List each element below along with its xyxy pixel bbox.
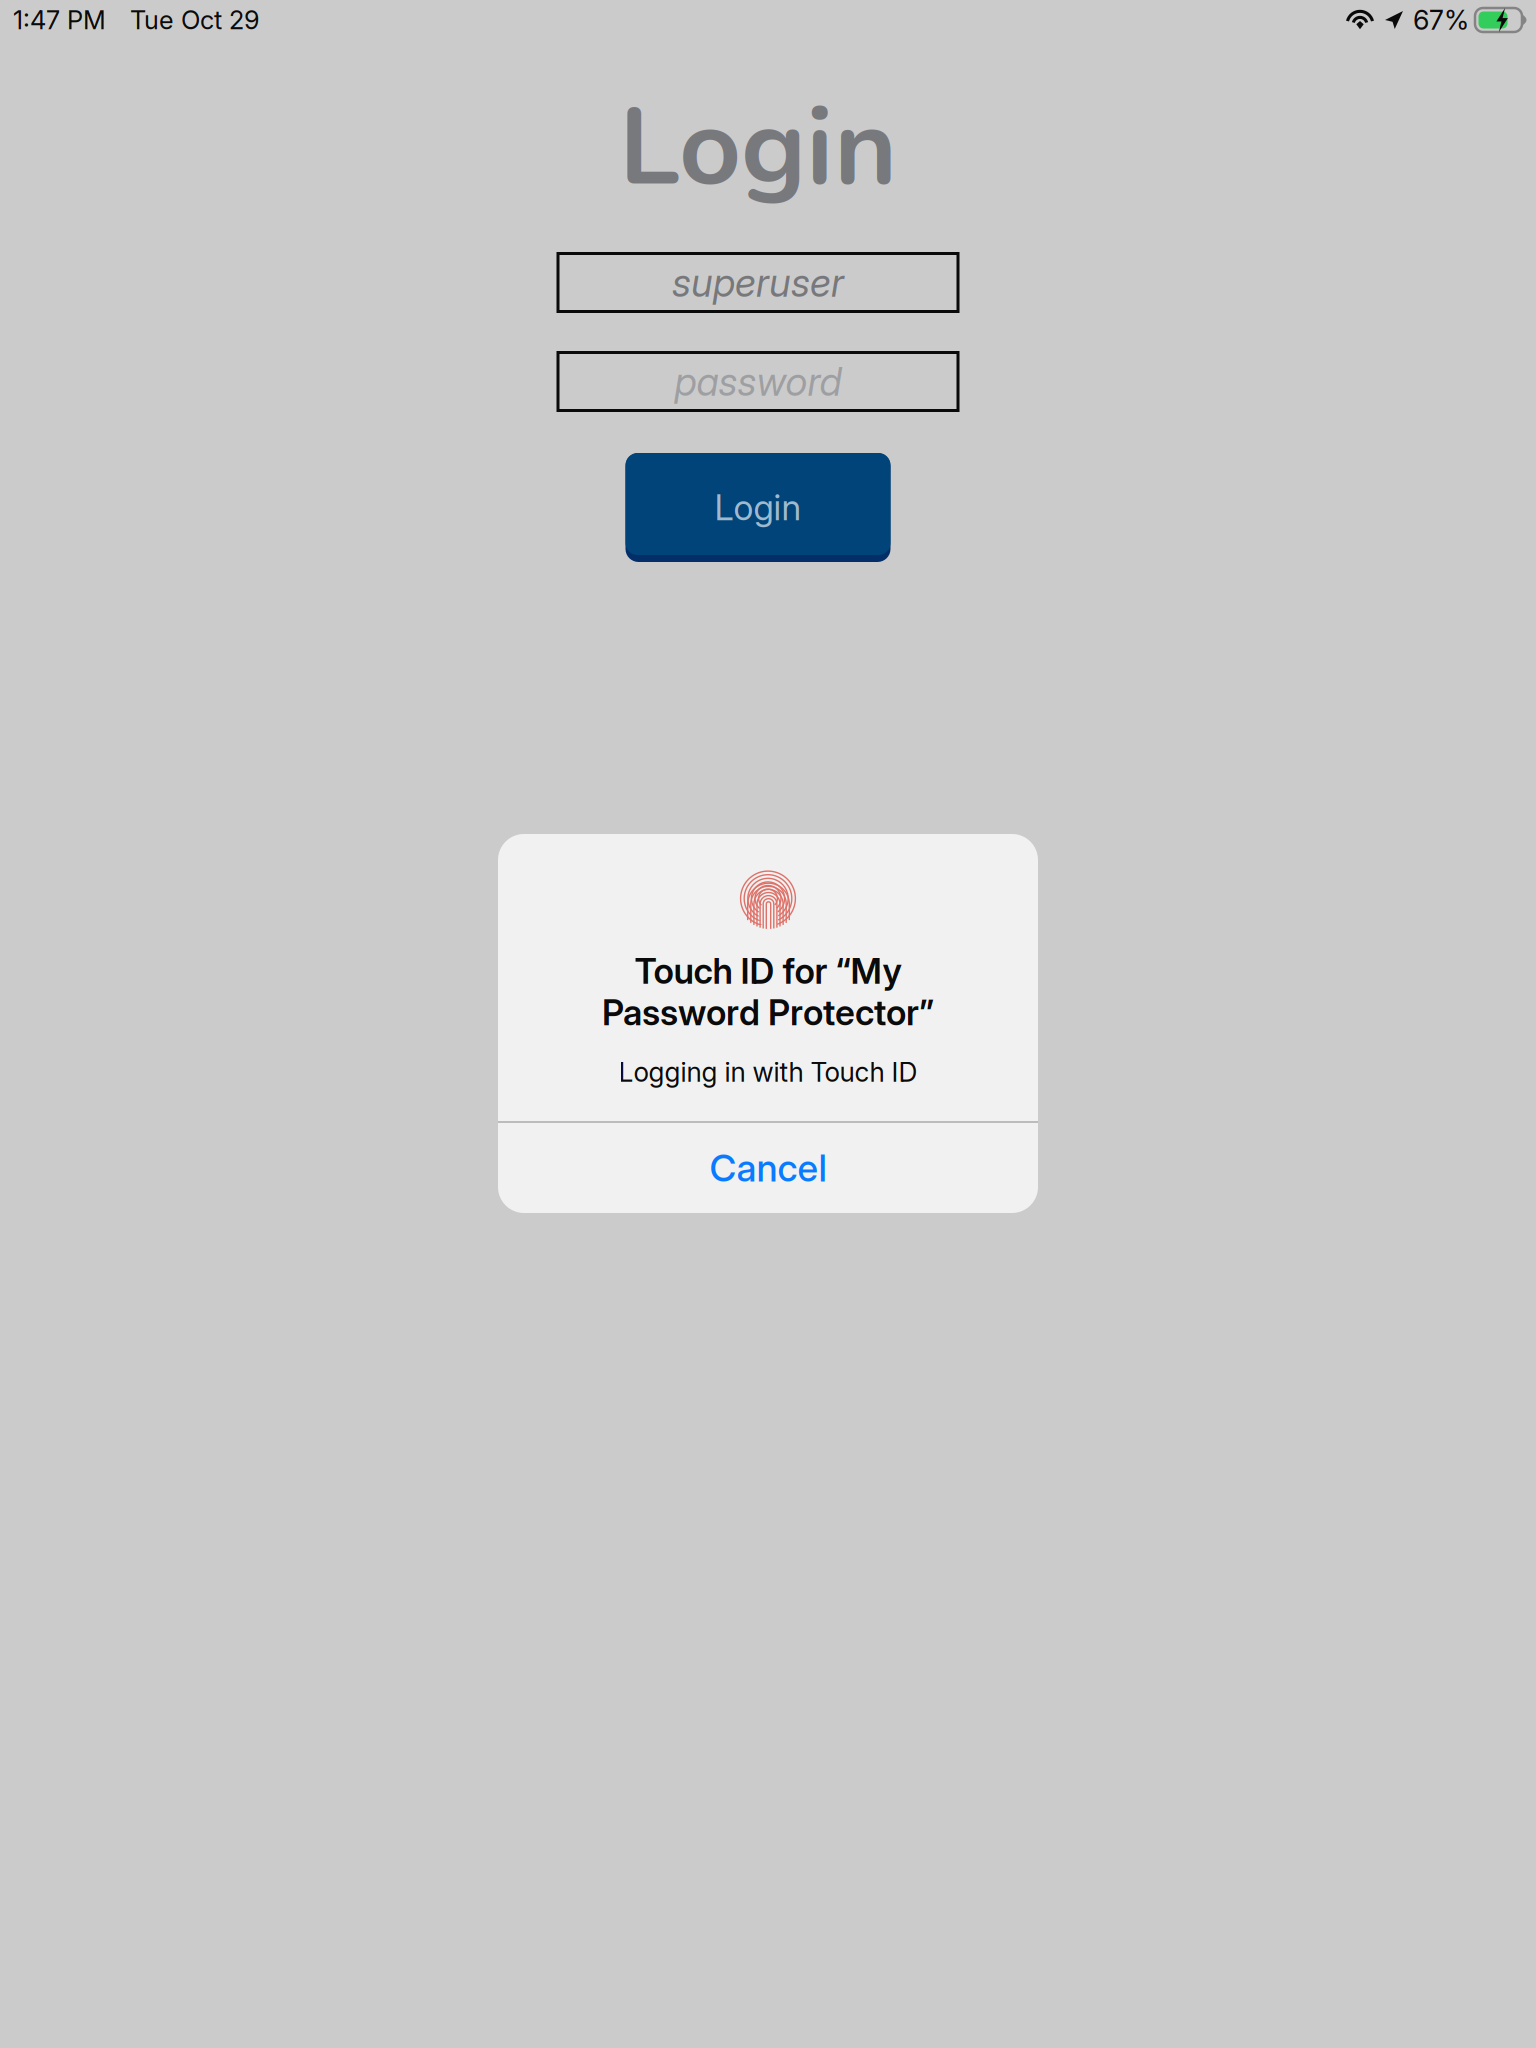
button[interactable]: password — [558, 352, 958, 410]
staticText: password — [674, 358, 841, 405]
staticText: 1:47 PM — [13, 5, 106, 35]
staticText: 67% — [1413, 4, 1469, 36]
button[interactable]: superuser — [558, 253, 958, 311]
staticText: Tue Oct 29 — [130, 5, 260, 35]
staticText: superuser — [672, 259, 844, 306]
staticText: Login — [714, 486, 801, 529]
staticText: Touch ID for “My — [634, 950, 901, 992]
staticText: Logging in with Touch ID — [618, 1056, 917, 1088]
staticText: Cancel — [709, 1146, 826, 1190]
staticText: Password Protector” — [602, 991, 934, 1034]
button[interactable]: Cancel — [498, 1123, 1038, 1213]
button[interactable]: Login — [625, 453, 890, 562]
staticText: Login — [619, 74, 897, 222]
